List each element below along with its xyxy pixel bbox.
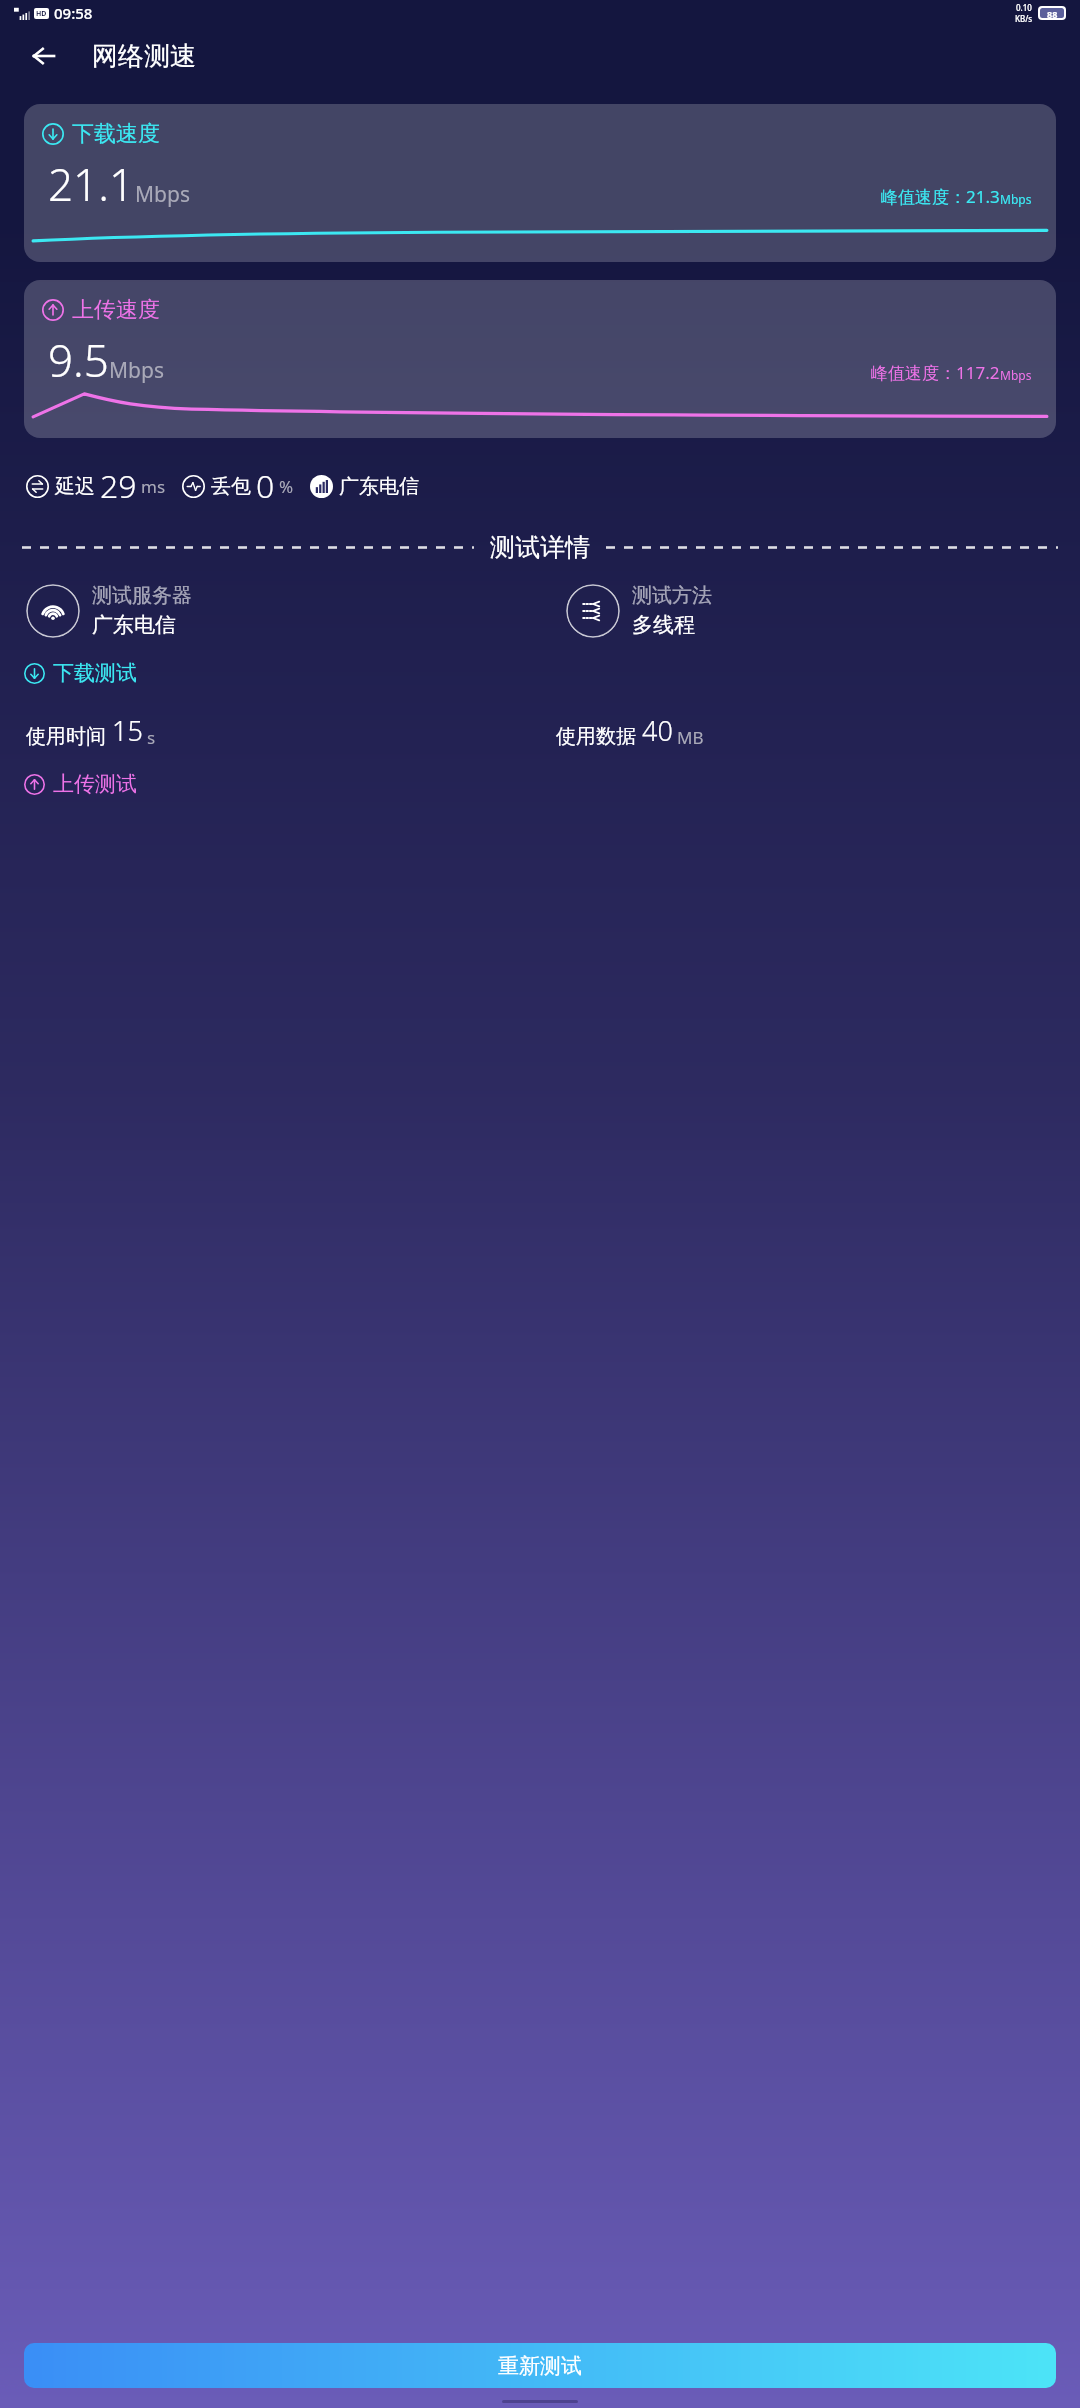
staticText: Mbps <box>135 180 190 209</box>
staticText: Mbps <box>1000 191 1032 207</box>
staticText: 丢包 <box>211 474 251 499</box>
button[interactable]: 测试方法 <box>566 584 620 638</box>
staticText: 网络测速 <box>92 40 196 73</box>
staticText: HD <box>36 9 47 19</box>
staticText: 使用时间 <box>26 724 106 749</box>
staticText: 88 <box>1047 8 1058 18</box>
staticText: 0 <box>256 464 275 508</box>
staticText: 40 <box>642 712 673 749</box>
staticText: s <box>147 726 156 749</box>
staticText: 上传测试 <box>53 771 137 797</box>
staticText: 重新测试 <box>498 2353 582 2379</box>
staticText: 测试服务器 <box>92 583 192 608</box>
button[interactable]: 下载速度 <box>24 104 1056 262</box>
button[interactable]: Back <box>22 34 66 78</box>
staticText: 峰值速度：21.3 <box>881 185 1000 208</box>
staticText: Mbps <box>1000 367 1032 383</box>
staticText: MB <box>677 726 704 749</box>
staticText: 广东电信 <box>92 612 176 638</box>
staticText: % <box>279 475 294 498</box>
button[interactable]: 上传速度 <box>24 280 1056 438</box>
button[interactable]: 测试服务器 <box>26 584 80 638</box>
staticText: ms <box>141 475 166 498</box>
staticText: 上传速度 <box>72 296 160 324</box>
staticText: Mbps <box>109 356 164 385</box>
staticText: 0.10 <box>1016 2 1032 13</box>
staticText: 下载测试 <box>53 660 137 686</box>
staticText: 09:58 <box>54 3 93 23</box>
staticText: 15 <box>112 712 143 749</box>
staticText: 延迟 <box>55 474 95 499</box>
staticText: KB/s <box>1015 13 1033 24</box>
staticText: 测试详情 <box>490 532 590 563</box>
staticText: 21.1 <box>48 154 135 214</box>
staticText: 峰值速度：117.2 <box>871 361 1000 384</box>
staticText: 29 <box>100 464 137 508</box>
staticText: 使用数据 <box>556 724 636 749</box>
staticText: 广东电信 <box>339 474 419 499</box>
staticText: 下载速度 <box>72 120 160 148</box>
staticText: 多线程 <box>632 612 695 638</box>
staticText: 测试方法 <box>632 583 712 608</box>
staticText: 9.5 <box>48 330 109 390</box>
button[interactable]: 重新测试 <box>24 2343 1056 2388</box>
